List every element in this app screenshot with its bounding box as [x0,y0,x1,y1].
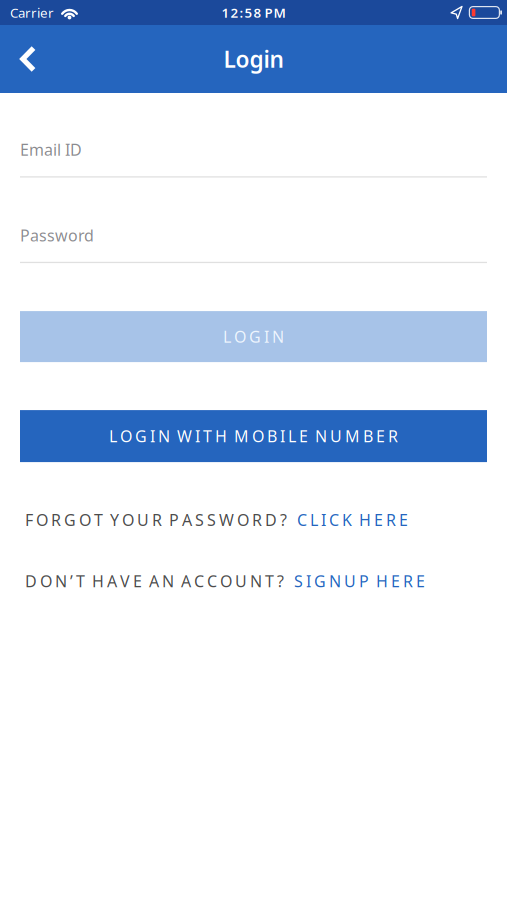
staticText: Password [20,224,94,246]
button[interactable]: Password [20,224,487,263]
staticText: Carrier [10,4,54,21]
button[interactable]: CLICK HERE [297,509,408,530]
staticText: F O R G O T Y O U R P A S S W O R D ? [25,509,287,530]
button[interactable]: Back [0,25,48,93]
staticText: S I G N U P H E R E [294,570,425,591]
staticText: D O N ’ T H A V E A N A C C O U N T ? [25,570,284,591]
staticText: Login [223,44,283,74]
staticText: C L I C K H E R E [297,509,408,530]
staticText: 1 2 : 5 8 P M [221,4,285,21]
staticText: L O G I N [223,326,284,347]
button[interactable]: Email ID [20,139,487,177]
button[interactable]: LOGIN WITH MOBILE NUMBER [20,410,487,462]
button[interactable]: LOGIN [20,311,487,362]
staticText: Email ID [20,139,82,160]
staticText: L O G I N W I T H M O B I L E N U M B E … [109,425,398,447]
button[interactable]: SIGNUP HERE [294,570,425,591]
